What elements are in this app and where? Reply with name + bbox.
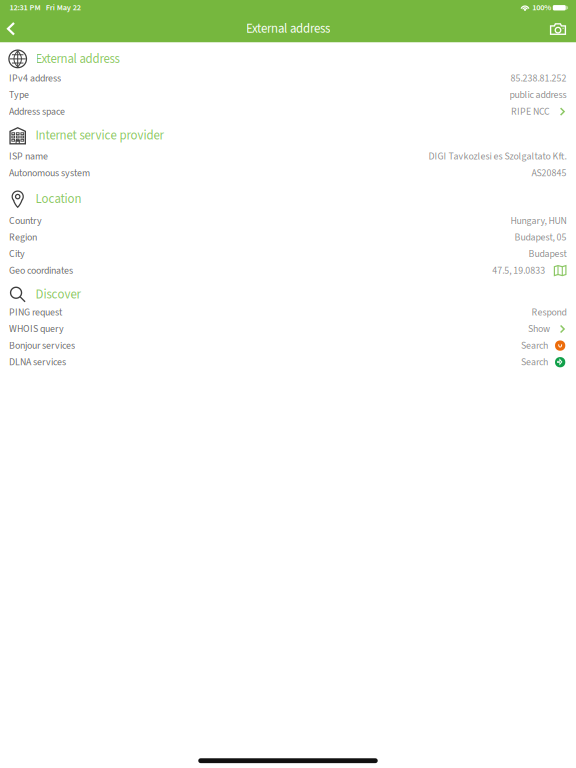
button[interactable]: Camera (546, 15, 570, 42)
staticText: AS20845 (532, 166, 567, 180)
staticText: Search (521, 355, 548, 369)
staticText: Search (521, 339, 548, 353)
staticText: Address space (9, 105, 65, 119)
staticText: Country (9, 214, 42, 228)
staticText: Geo coordinates (9, 264, 73, 278)
staticText: 12:31 PM (9, 2, 40, 14)
staticText: DLNA services (9, 355, 66, 369)
staticText: External address (36, 50, 120, 68)
staticText: Internet service provider (36, 126, 164, 145)
staticText: Type (9, 88, 29, 102)
staticText: Fri May 22 (46, 2, 81, 14)
staticText: External address (246, 20, 330, 38)
button[interactable]: Back (0, 15, 22, 42)
staticText: Budapest (529, 247, 567, 261)
staticText: public address (510, 88, 567, 102)
staticText: Bonjour services (9, 339, 75, 353)
staticText: ISP name (9, 149, 48, 164)
button[interactable]: WHOIS query (0, 321, 576, 337)
button[interactable]: DLNA services (0, 354, 576, 370)
staticText: Region (9, 230, 37, 244)
button[interactable]: Geo coordinates (0, 262, 576, 279)
button[interactable]: PING request (0, 304, 576, 321)
staticText: City (9, 247, 25, 261)
button[interactable]: Bonjour services (0, 337, 576, 354)
staticText: Respond (532, 305, 567, 319)
staticText: Budapest, 05 (515, 230, 567, 244)
staticText: IPv4 address (9, 71, 61, 85)
staticText: 85.238.81.252 (511, 71, 567, 85)
staticText: 47.5, 19.0833 (492, 264, 545, 278)
staticText: PING request (9, 305, 62, 319)
staticText: WHOIS query (9, 322, 64, 336)
staticText: Show (528, 322, 550, 336)
staticText: RIPE NCC (511, 105, 550, 119)
staticText: Hungary, HUN (511, 214, 567, 228)
staticText: Location (36, 190, 82, 208)
staticText: Discover (36, 285, 81, 303)
staticText: DIGI Tavkozlesi es Szolgaltato Kft. (429, 149, 567, 164)
staticText: Autonomous system (9, 166, 90, 180)
staticText: 100% (532, 2, 551, 14)
button[interactable]: Address space (0, 103, 576, 120)
